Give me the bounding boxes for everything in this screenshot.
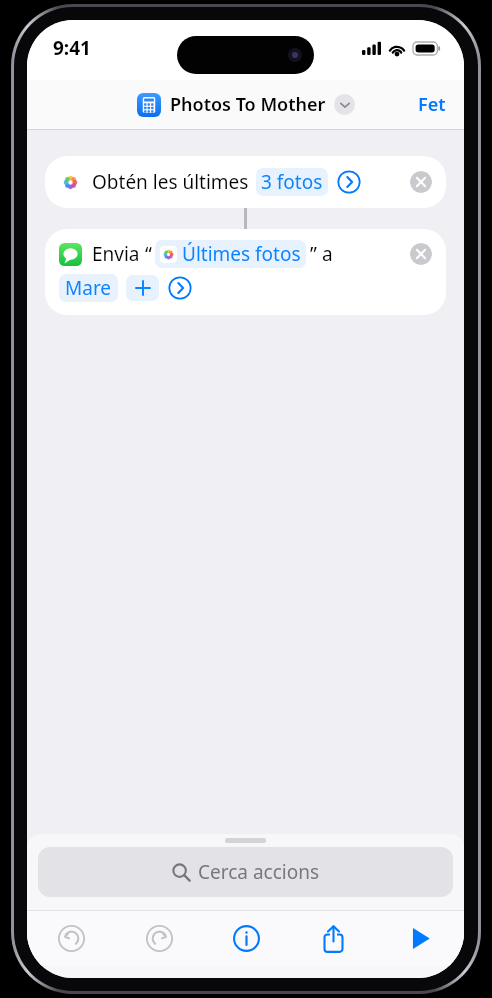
button[interactable]: Obtén les últimes <box>45 156 446 208</box>
staticText: ” <box>310 241 317 267</box>
button[interactable]: 3 fotos <box>256 168 328 196</box>
button[interactable]: Remove action <box>45 229 446 315</box>
button[interactable]: Remove action <box>410 171 432 193</box>
button[interactable]: Redo <box>115 911 203 966</box>
button[interactable]: Mare <box>59 274 118 302</box>
staticText: Cerca accions <box>198 859 320 885</box>
button[interactable]: Shortcut options <box>334 94 355 115</box>
button[interactable]: Fet <box>400 84 464 125</box>
staticText: Obtén les últimes <box>92 169 249 195</box>
button[interactable]: Show more <box>337 170 361 194</box>
button[interactable]: Cerca accions <box>38 847 453 897</box>
staticText: Envia <box>92 241 140 267</box>
button[interactable]: Remove action <box>410 243 432 265</box>
button[interactable]: Show more <box>168 276 192 300</box>
staticText: 9:41 <box>53 35 91 61</box>
staticText: Photos To Mother <box>170 92 326 117</box>
button[interactable]: Undo <box>27 911 115 966</box>
button[interactable]: Últimes fotos <box>155 240 306 268</box>
staticText: Mare <box>65 275 112 301</box>
staticText: “ <box>145 241 152 267</box>
button[interactable]: Add recipient <box>126 275 159 301</box>
button[interactable]: Info <box>203 911 290 966</box>
staticText: Fet <box>418 92 446 117</box>
staticText: 3 fotos <box>261 169 323 195</box>
staticText: a <box>322 241 333 267</box>
button[interactable]: Share <box>290 911 377 966</box>
button[interactable]: Run shortcut <box>377 911 464 966</box>
staticText: Últimes fotos <box>182 241 301 267</box>
